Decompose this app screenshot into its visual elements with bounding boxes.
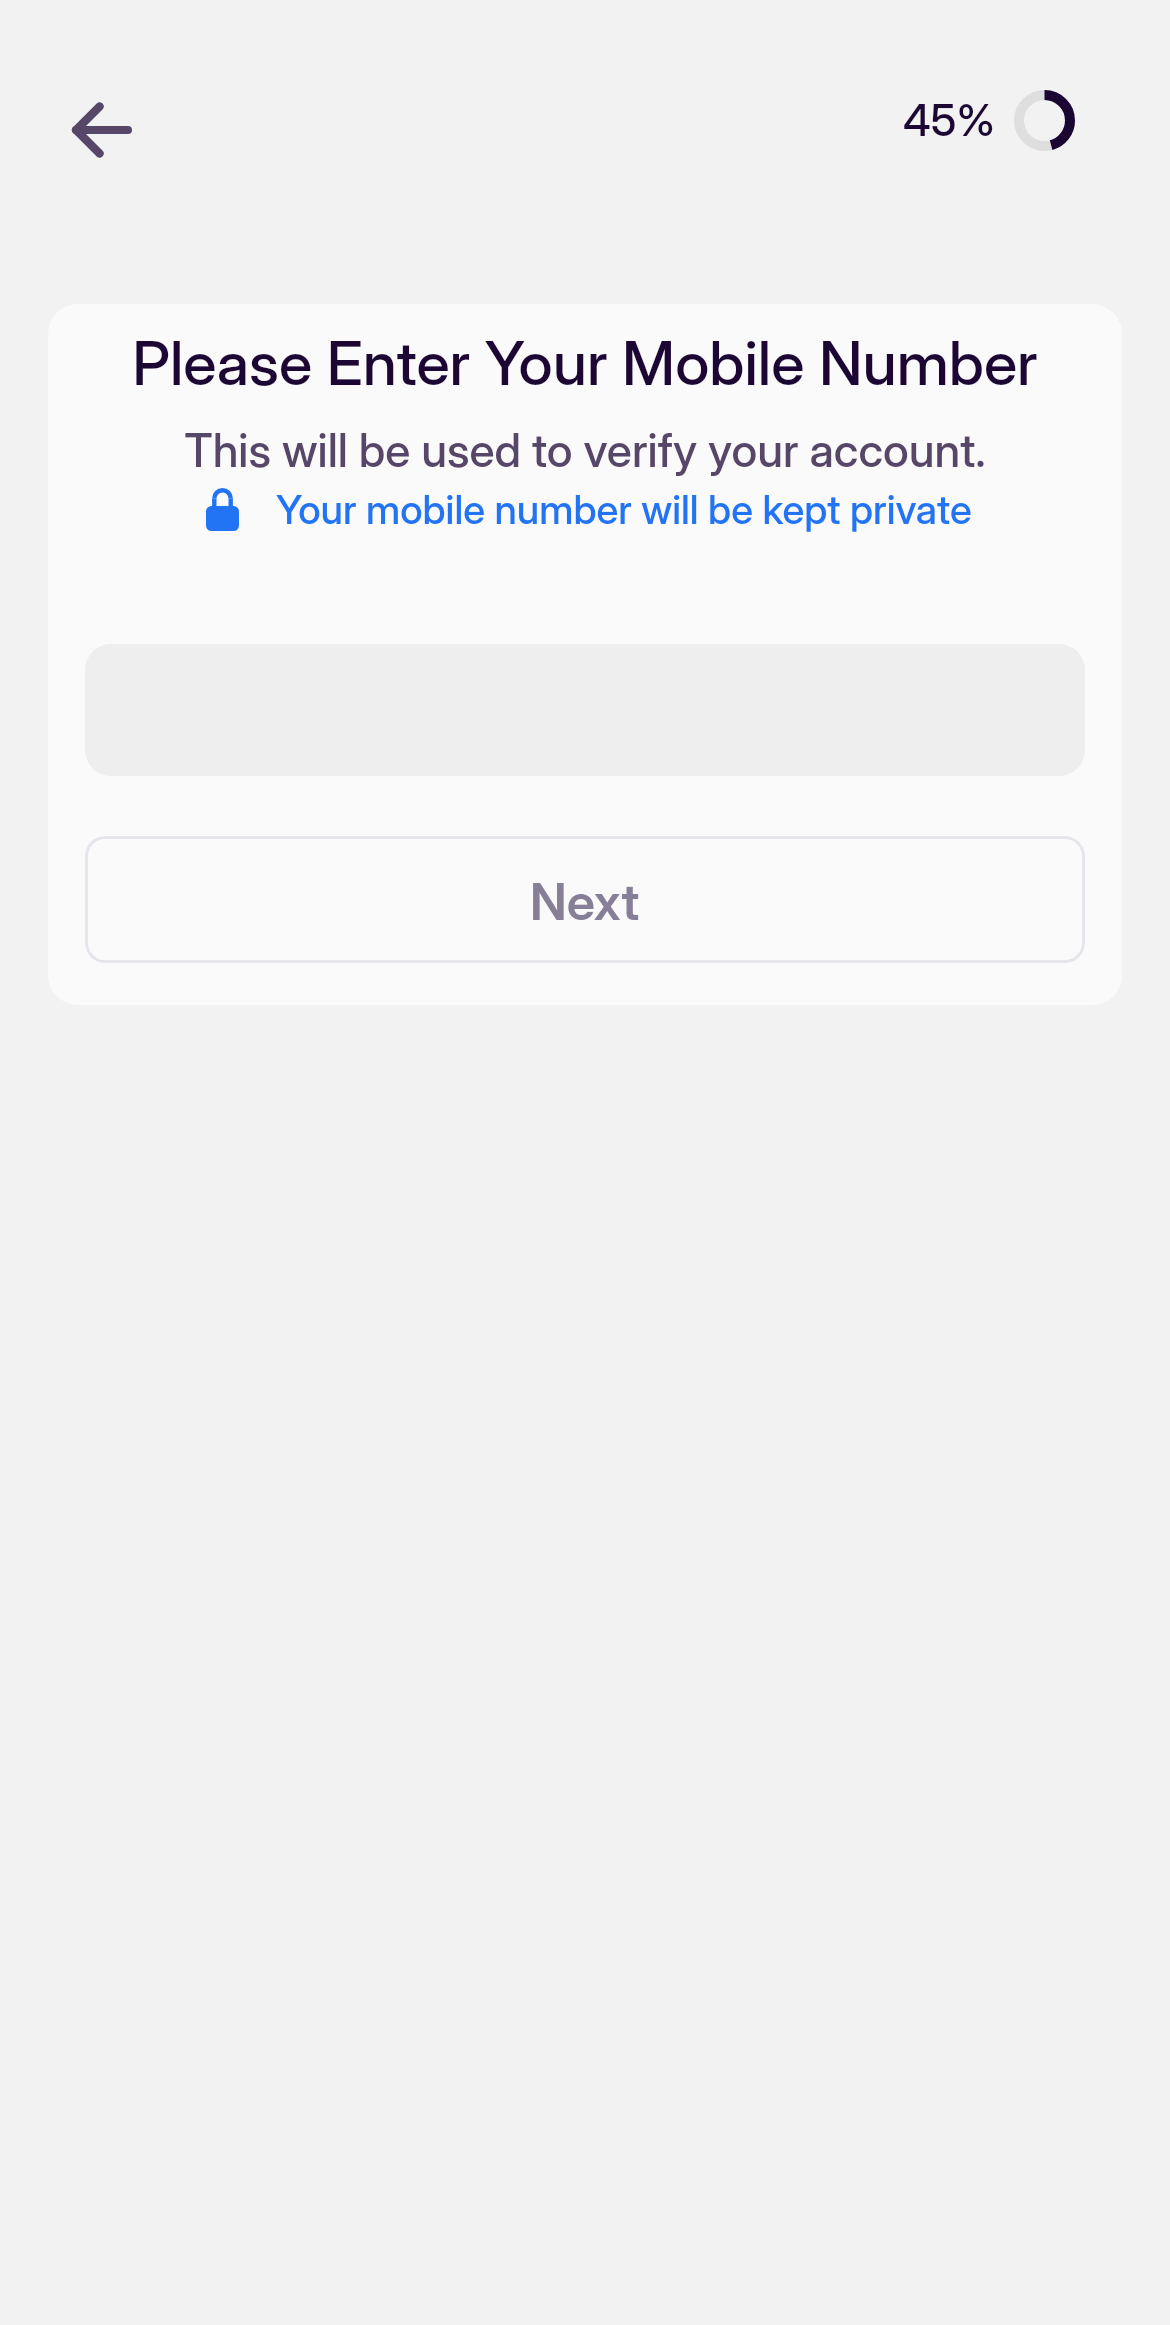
staticText: 45% [903,93,995,143]
button[interactable]: Back [58,86,146,174]
staticText: Your mobile number will be kept private [276,485,972,533]
button[interactable]: Next [85,836,1085,963]
staticText: Next [530,871,640,933]
staticText: This will be used to verify your account… [48,422,1122,478]
staticText: Please Enter Your Mobile Number [48,326,1122,400]
